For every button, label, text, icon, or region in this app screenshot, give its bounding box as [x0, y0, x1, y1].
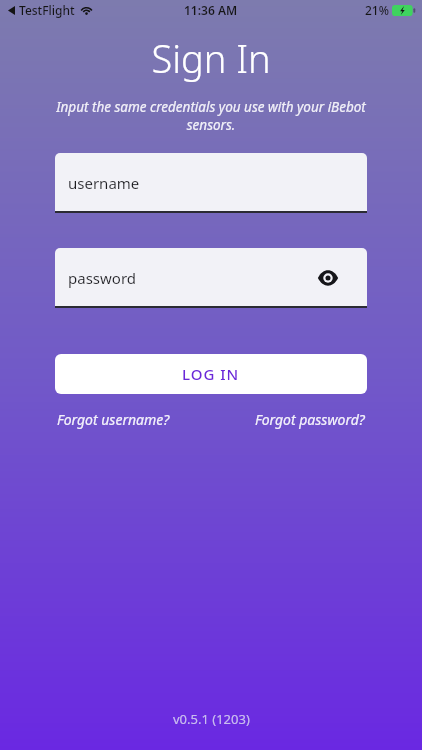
- staticText: v0.5.1 (1203): [173, 710, 250, 728]
- button[interactable]: username: [55, 153, 367, 213]
- staticText: TestFlight: [19, 2, 75, 18]
- button[interactable]: LOG IN: [55, 354, 367, 394]
- staticText: LOG IN: [182, 364, 240, 384]
- staticText: Input the same credentials you use with …: [51, 98, 371, 134]
- staticText: 21%: [365, 2, 389, 18]
- staticText: 11:36 AM: [184, 2, 238, 18]
- button[interactable]: Forgot username?: [55, 408, 172, 431]
- button[interactable]: Show password: [315, 265, 341, 291]
- staticText: username: [68, 173, 140, 193]
- button[interactable]: password: [55, 248, 367, 308]
- staticText: Forgot username?: [57, 410, 170, 429]
- staticText: Sign In: [151, 32, 271, 84]
- staticText: Forgot password?: [255, 410, 365, 429]
- button[interactable]: Forgot password?: [253, 408, 367, 431]
- staticText: password: [68, 268, 136, 288]
